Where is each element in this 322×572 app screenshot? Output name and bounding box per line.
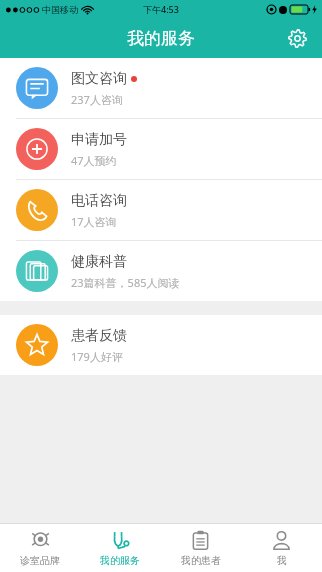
- staticText: 图文咨询: [71, 70, 127, 88]
- staticText: 我的服务: [127, 28, 195, 49]
- staticText: 我: [277, 554, 287, 567]
- button[interactable]: 我的患者: [160, 524, 241, 572]
- button[interactable]: 电话咨询: [0, 180, 322, 240]
- staticText: 下午4:53: [143, 3, 179, 15]
- staticText: 23篇科普，585人阅读: [71, 275, 180, 290]
- staticText: 47人预约: [71, 153, 117, 168]
- staticText: 健康科普: [71, 253, 127, 271]
- button[interactable]: 健康科普: [0, 241, 322, 301]
- staticText: 中国移动: [42, 4, 78, 15]
- staticText: 诊室品牌: [20, 554, 60, 567]
- button[interactable]: 设置: [280, 21, 314, 55]
- staticText: 我的患者: [181, 554, 221, 567]
- button[interactable]: 我: [241, 524, 322, 572]
- staticText: 237人咨询: [71, 92, 123, 107]
- button[interactable]: 诊室品牌: [0, 524, 80, 572]
- button[interactable]: 患者反馈: [0, 315, 322, 375]
- staticText: 17人咨询: [71, 214, 117, 229]
- staticText: 患者反馈: [71, 327, 127, 345]
- button[interactable]: 我的服务: [80, 524, 160, 572]
- button[interactable]: 申请加号: [0, 119, 322, 179]
- staticText: 179人好评: [71, 349, 123, 364]
- staticText: 申请加号: [71, 131, 127, 149]
- staticText: 电话咨询: [71, 192, 127, 210]
- staticText: 我的服务: [100, 554, 140, 567]
- button[interactable]: 图文咨询: [0, 58, 322, 118]
